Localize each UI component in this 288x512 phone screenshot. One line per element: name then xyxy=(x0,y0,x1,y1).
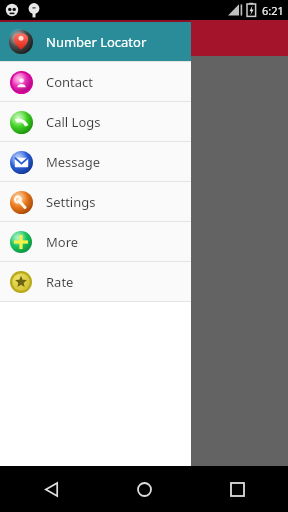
staticText: Number Locator xyxy=(27,28,139,48)
button[interactable]: Show in Map xyxy=(12,170,113,196)
button[interactable]: Back xyxy=(34,472,68,506)
staticText: More xyxy=(46,233,79,251)
button[interactable]: Rate xyxy=(0,262,191,301)
staticText: Number Locator xyxy=(46,33,147,51)
staticText: 6:21 xyxy=(262,3,284,18)
button[interactable]: Open navigation drawer xyxy=(0,23,30,53)
button[interactable]: More xyxy=(0,222,191,261)
staticText: Search results for the number you entere… xyxy=(12,112,276,160)
button[interactable]: Call Logs xyxy=(0,102,191,141)
button[interactable]: Home xyxy=(127,472,161,506)
button[interactable]: Contact xyxy=(0,62,191,101)
staticText: Contact xyxy=(46,73,94,91)
button[interactable]: Number Locator xyxy=(0,22,191,61)
staticText: Settings xyxy=(46,193,96,211)
button[interactable]: Message xyxy=(0,142,191,181)
staticText: Call Logs xyxy=(46,113,101,131)
staticText: Message xyxy=(46,153,101,171)
button[interactable]: Settings xyxy=(0,182,191,221)
staticText: Rate xyxy=(46,273,74,291)
button[interactable]: Recent apps xyxy=(220,472,254,506)
staticText: Show in Map xyxy=(26,175,99,191)
